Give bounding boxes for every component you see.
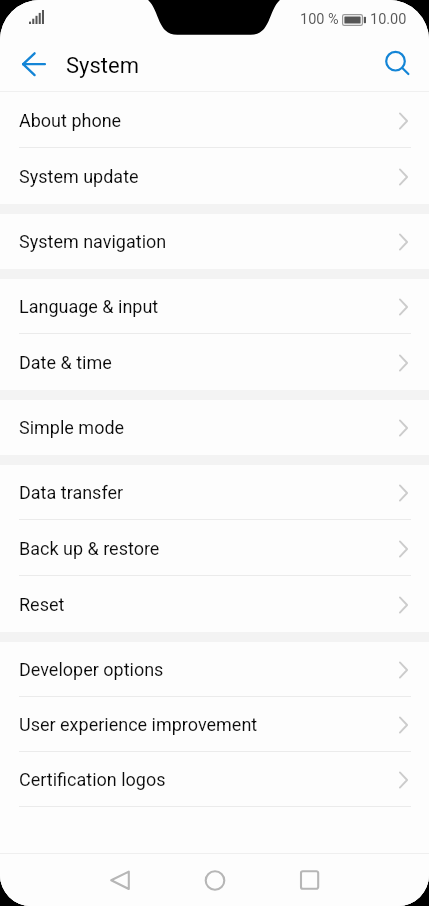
staticText: Developer options (19, 659, 164, 680)
staticText: Reset (19, 594, 65, 615)
staticText: Data transfer (19, 482, 124, 503)
button[interactable]: Language & input (0, 279, 429, 334)
staticText: Certification logos (19, 769, 166, 790)
staticText: User experience improvement (19, 714, 258, 735)
staticText: Simple mode (19, 417, 125, 438)
staticText: Back up & restore (19, 538, 160, 559)
staticText: 10.00 (370, 11, 407, 28)
staticText: Date & time (19, 352, 112, 373)
button[interactable]: Certification logos (0, 752, 429, 807)
button[interactable]: Search (375, 34, 429, 92)
button[interactable]: System navigation (0, 214, 429, 269)
button[interactable]: Reset (0, 576, 429, 632)
button[interactable]: Back (0, 34, 52, 92)
staticText: System (66, 53, 139, 79)
staticText: 100 % (300, 11, 339, 28)
staticText: System navigation (19, 231, 167, 252)
button[interactable]: Date & time (0, 334, 429, 390)
button[interactable]: Back up & restore (0, 520, 429, 576)
button[interactable]: Recents (262, 853, 357, 906)
button[interactable]: System update (0, 148, 429, 204)
button[interactable]: Simple mode (0, 400, 429, 455)
staticText: About phone (19, 110, 122, 131)
staticText: System update (19, 166, 139, 187)
button[interactable]: Developer options (0, 642, 429, 697)
button[interactable]: Back (72, 853, 167, 906)
button[interactable]: About phone (0, 92, 429, 148)
button[interactable]: Home (167, 853, 262, 906)
staticText: Language & input (19, 296, 159, 317)
button[interactable]: Data transfer (0, 465, 429, 520)
button[interactable]: User experience improvement (0, 697, 429, 752)
